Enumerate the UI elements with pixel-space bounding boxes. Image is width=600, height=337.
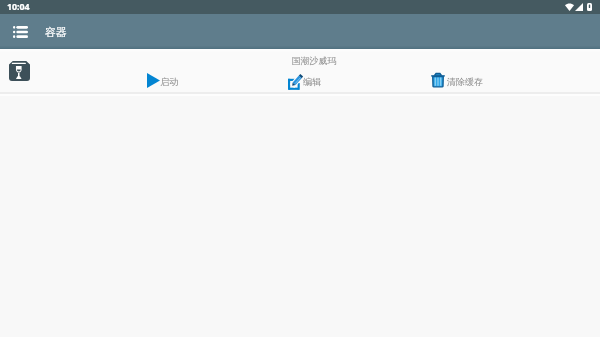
staticText: 编辑 [303,76,321,87]
staticText: 启动 [160,76,178,87]
button[interactable]: 清除缓存 [431,73,483,87]
staticText: 国潮沙威玛 [14,55,600,66]
button[interactable]: Menu [4,16,36,48]
button[interactable]: 启动 [147,73,178,88]
staticText: 10:04 [7,1,30,13]
staticText: 容器 [45,25,67,39]
button[interactable]: Container [0,49,600,92]
staticText: 清除缓存 [447,76,483,87]
button[interactable]: 编辑 [288,74,321,90]
button[interactable]: Container [9,61,30,81]
